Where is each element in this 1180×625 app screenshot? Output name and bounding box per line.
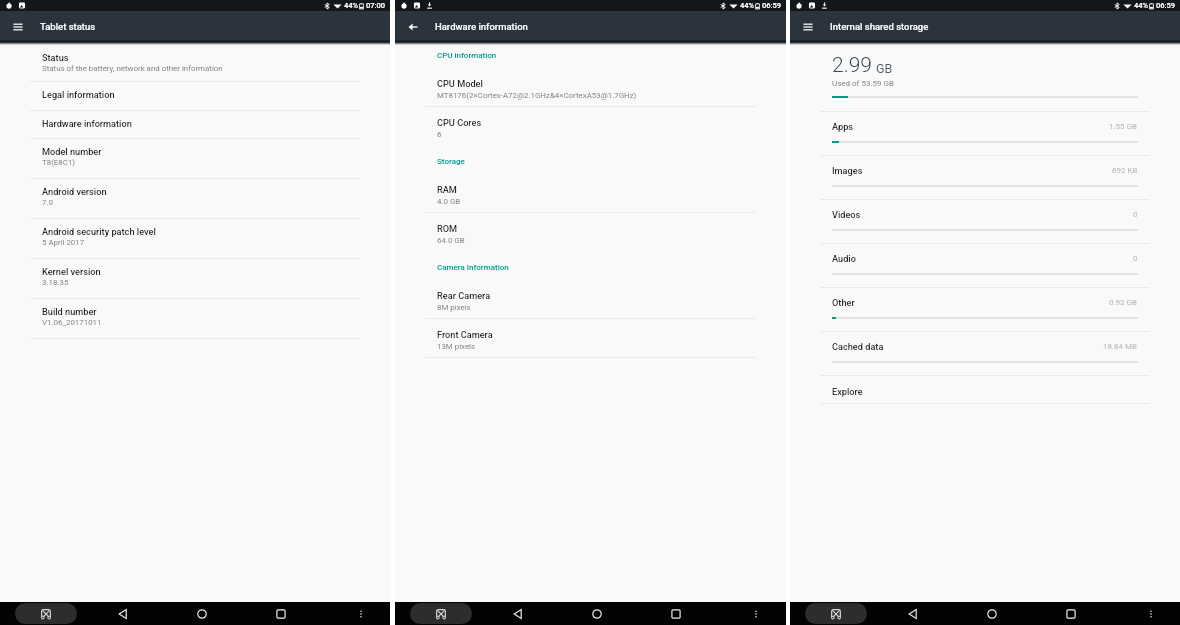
staticText: Hardware information xyxy=(42,118,132,129)
button[interactable]: CPU Cores xyxy=(395,107,786,146)
button[interactable]: More options xyxy=(350,602,372,625)
button[interactable]: RAM xyxy=(395,174,786,213)
button[interactable]: Back xyxy=(112,602,134,625)
staticText: Status of the battery, network and other… xyxy=(42,64,223,73)
button[interactable]: Images xyxy=(790,156,1180,200)
button[interactable]: Videos xyxy=(790,200,1180,244)
staticText: Tablet status xyxy=(40,21,96,32)
staticText: 0 xyxy=(1133,254,1138,263)
staticText: CPU Model xyxy=(437,78,483,89)
button[interactable]: Model number xyxy=(0,139,390,179)
button[interactable]: ROM xyxy=(395,213,786,252)
staticText: Internal shared storage xyxy=(830,21,929,32)
staticText: Android security patch level xyxy=(42,226,156,237)
staticText: 18.84 MB xyxy=(1103,342,1138,351)
staticText: ROM xyxy=(437,223,458,234)
staticText: 0.92 GB xyxy=(1109,298,1138,307)
staticText: CPU Cores xyxy=(437,117,482,128)
staticText: Storage xyxy=(437,157,465,166)
button[interactable]: Back xyxy=(902,602,924,625)
button[interactable]: Screenshot xyxy=(15,603,77,624)
staticText: 692 KB xyxy=(1112,166,1138,175)
button[interactable]: Android security patch level xyxy=(0,219,390,259)
button[interactable]: Apps xyxy=(790,112,1180,156)
staticText: RAM xyxy=(437,184,457,195)
button[interactable]: Home xyxy=(191,602,213,625)
staticText: 5 April 2017 xyxy=(42,238,85,247)
staticText: 8M pixels xyxy=(437,303,471,312)
button[interactable]: More options xyxy=(1140,602,1162,625)
button[interactable]: Recent apps xyxy=(270,602,292,625)
staticText: 2.99 xyxy=(832,53,872,78)
staticText: Model number xyxy=(42,146,102,157)
staticText: 0 xyxy=(1133,210,1138,219)
staticText: 07:00 xyxy=(366,1,386,10)
button[interactable]: Status xyxy=(0,45,390,82)
staticText: Other xyxy=(832,297,855,308)
button[interactable]: Android version xyxy=(0,179,390,219)
button[interactable]: Back xyxy=(507,602,529,625)
staticText: 7.0 xyxy=(42,198,53,207)
button[interactable]: Open navigation drawer xyxy=(0,12,35,41)
button[interactable]: CPU Model xyxy=(395,68,786,107)
button[interactable]: Recent apps xyxy=(1060,602,1082,625)
staticText: 1.55 GB xyxy=(1109,122,1138,131)
staticText: Used of 53.59 GB xyxy=(832,79,894,88)
button[interactable]: Other xyxy=(790,288,1180,332)
staticText: GB xyxy=(876,61,893,76)
staticText: Status xyxy=(42,52,69,63)
staticText: T8(E8C1) xyxy=(42,158,76,167)
staticText: Cached data xyxy=(832,341,884,352)
button[interactable]: Home xyxy=(586,602,608,625)
button[interactable]: Cached data xyxy=(790,332,1180,376)
button[interactable]: Hardware information xyxy=(0,111,390,139)
staticText: 06:59 xyxy=(1156,1,1176,10)
staticText: Apps xyxy=(832,121,854,132)
staticText: Audio xyxy=(832,253,856,264)
staticText: Rear Camera xyxy=(437,290,491,301)
button[interactable]: Navigate up xyxy=(395,12,430,41)
button[interactable]: Screenshot xyxy=(805,603,867,624)
button[interactable]: More options xyxy=(745,602,767,625)
staticText: 06:59 xyxy=(762,1,782,10)
staticText: CPU information xyxy=(437,51,497,60)
button[interactable]: Explore xyxy=(790,376,1180,404)
staticText: 44% xyxy=(740,1,755,10)
staticText: 6 xyxy=(437,130,442,139)
staticText: Android version xyxy=(42,186,107,197)
staticText: 64.0 GB xyxy=(437,236,465,245)
staticText: Build number xyxy=(42,306,97,317)
staticText: Videos xyxy=(832,209,861,220)
staticText: 44% xyxy=(344,1,359,10)
button[interactable]: Build number xyxy=(0,299,390,339)
button[interactable]: Screenshot xyxy=(410,603,472,624)
button[interactable]: Audio xyxy=(790,244,1180,288)
button[interactable]: Rear Camera xyxy=(395,280,786,319)
staticText: Hardware information xyxy=(435,21,528,32)
button[interactable]: Recent apps xyxy=(665,602,687,625)
button[interactable]: Open navigation drawer xyxy=(790,12,825,41)
staticText: 3.18.35 xyxy=(42,278,69,287)
button[interactable]: Home xyxy=(981,602,1003,625)
staticText: Legal information xyxy=(42,89,115,100)
staticText: 4.0 GB xyxy=(437,197,461,206)
staticText: Camera Information xyxy=(437,263,509,272)
button[interactable]: Kernel version xyxy=(0,259,390,299)
staticText: V1.06_20171011 xyxy=(42,318,102,327)
button[interactable]: Front Camera xyxy=(395,319,786,358)
staticText: MT8176(2×Cortex-A72@2.1GHz&4×CortexA53@1… xyxy=(437,91,637,100)
button[interactable]: Legal information xyxy=(0,82,390,111)
staticText: Images xyxy=(832,165,863,176)
staticText: Front Camera xyxy=(437,329,493,340)
staticText: Explore xyxy=(832,386,863,397)
staticText: 44% xyxy=(1134,1,1149,10)
staticText: Kernel version xyxy=(42,266,101,277)
staticText: 13M pixels xyxy=(437,342,476,351)
